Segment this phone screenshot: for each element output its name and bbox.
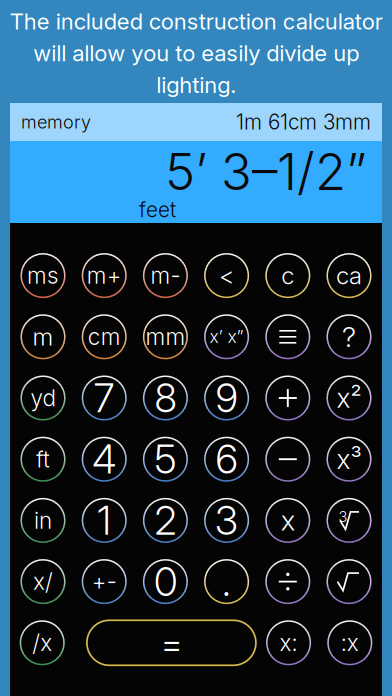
button[interactable]: < [196, 245, 257, 306]
staticText: 2 [154, 497, 176, 544]
button[interactable]: 5 [135, 429, 196, 490]
staticText: 1 [97, 497, 111, 544]
button[interactable]: ? [318, 306, 380, 367]
button[interactable]: . [196, 551, 257, 612]
staticText: x [281, 503, 295, 537]
button[interactable]: 7 [74, 367, 135, 429]
staticText: /x [32, 629, 52, 656]
button[interactable]: Cube root [318, 490, 380, 551]
button[interactable]: ft [12, 429, 74, 490]
button[interactable]: x [257, 490, 318, 551]
button[interactable]: x² [318, 367, 380, 429]
button[interactable]: 9 [196, 367, 257, 429]
button[interactable]: 1 [74, 490, 135, 551]
staticText: ? [342, 320, 356, 354]
button[interactable]: x: [258, 612, 319, 673]
staticText: The included construction calculator wil… [9, 8, 382, 98]
staticText: 3 [338, 508, 347, 526]
button[interactable]: 6 [196, 429, 257, 490]
staticText: m- [150, 262, 180, 289]
staticText: 9 [216, 374, 238, 422]
staticText: . [222, 558, 231, 605]
staticText: 8 [154, 374, 176, 422]
staticText: x² [336, 382, 361, 414]
button[interactable]: Square root [318, 551, 380, 612]
button[interactable]: 3 [196, 490, 257, 551]
button[interactable]: ca [318, 245, 380, 306]
staticText: 1m 61cm 3mm [236, 109, 371, 134]
staticText: c [281, 261, 294, 290]
button[interactable]: cm [74, 306, 135, 367]
button[interactable]: m [12, 306, 74, 367]
staticText: x³ [336, 443, 361, 475]
staticText: yd [30, 384, 55, 412]
staticText: cm [88, 323, 121, 350]
staticText: in [34, 507, 52, 534]
staticText: x’ x” [210, 326, 244, 347]
staticText: :x [341, 629, 359, 656]
button[interactable]: m- [135, 245, 196, 306]
staticText: ft [36, 445, 50, 473]
staticText: m [32, 322, 53, 351]
button[interactable]: 2 [135, 490, 196, 551]
staticText: x/ [33, 568, 53, 595]
button[interactable]: Menu [257, 306, 318, 367]
staticText: 7 [94, 374, 115, 422]
staticText: m+ [87, 262, 122, 289]
button[interactable]: Divide [257, 551, 318, 612]
button[interactable]: c [257, 245, 318, 306]
staticText: < [219, 261, 234, 290]
staticText: 5’ 3–1/2” [165, 141, 367, 202]
staticText: x: [280, 629, 298, 656]
button[interactable]: x/ [12, 551, 74, 612]
button[interactable]: 8 [135, 367, 196, 429]
button[interactable]: in [12, 490, 74, 551]
button[interactable]: = [73, 612, 258, 673]
button[interactable]: yd [12, 367, 74, 429]
button[interactable]: x³ [318, 429, 380, 490]
button[interactable]: Plus [257, 367, 318, 429]
staticText: feet [139, 197, 176, 222]
button[interactable]: m+ [74, 245, 135, 306]
button[interactable]: mm [135, 306, 196, 367]
button[interactable]: 0 [135, 551, 196, 612]
button[interactable]: /x [12, 612, 73, 673]
button[interactable]: Minus [257, 429, 318, 490]
staticText: = [160, 621, 182, 665]
staticText: +- [92, 568, 117, 595]
button[interactable]: x’ x” [196, 306, 257, 367]
button[interactable]: +- [74, 551, 135, 612]
button[interactable]: ms [12, 245, 74, 306]
staticText: memory [21, 111, 91, 133]
staticText: mm [145, 323, 185, 350]
staticText: 6 [216, 435, 238, 483]
staticText: 3 [215, 497, 238, 544]
staticText: 0 [154, 558, 177, 605]
staticText: 4 [92, 435, 116, 483]
button[interactable]: :x [319, 612, 380, 673]
staticText: ms [27, 262, 59, 289]
button[interactable]: 4 [74, 429, 135, 490]
staticText: ca [336, 261, 362, 290]
staticText: 5 [154, 435, 176, 483]
